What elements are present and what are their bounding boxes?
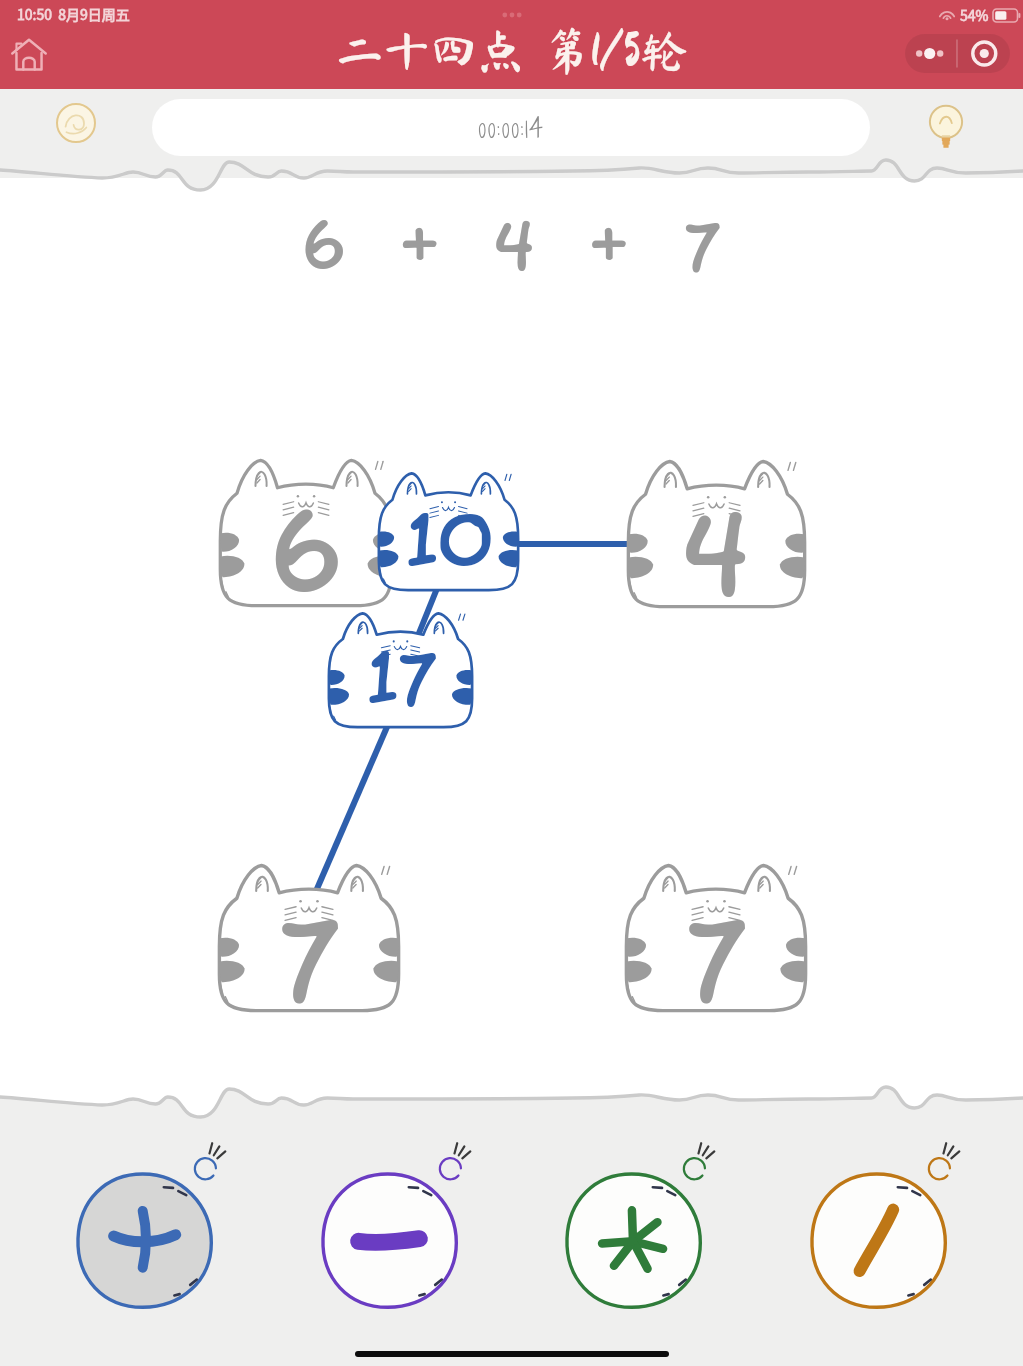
staticText: 7 <box>684 895 749 1017</box>
button[interactable]: 00:00:14 <box>152 99 870 156</box>
staticText: 二十四点 第1/5轮 <box>336 27 688 74</box>
button[interactable]: Multiply <box>555 1144 717 1322</box>
button[interactable]: 10 <box>377 469 520 592</box>
staticText: 10 <box>405 498 492 594</box>
button[interactable]: Hint <box>920 100 972 152</box>
staticText: 6 <box>270 490 343 612</box>
button[interactable]: Divide <box>800 1144 962 1322</box>
button[interactable]: 7 <box>624 860 808 1013</box>
staticText: 10:50 8月9日周五 <box>17 4 130 24</box>
button[interactable]: Minus <box>311 1144 473 1322</box>
staticText: 7 <box>277 895 342 1017</box>
button[interactable]: 4 <box>626 456 807 609</box>
button[interactable]: Home <box>10 36 48 74</box>
button[interactable]: 7 <box>217 860 401 1013</box>
staticText: 4 <box>682 491 751 613</box>
button[interactable]: 17 <box>327 609 474 729</box>
staticText: 00:00:14 <box>478 106 545 149</box>
button[interactable]: 6 <box>218 455 394 608</box>
staticText: 6 + 4 + 7 <box>302 207 722 295</box>
staticText: 17 <box>366 637 436 731</box>
button[interactable]: More options <box>905 34 1010 73</box>
button[interactable]: Plus <box>66 1144 228 1322</box>
staticText: 54% <box>960 5 989 25</box>
button[interactable]: Coins <box>56 103 96 143</box>
